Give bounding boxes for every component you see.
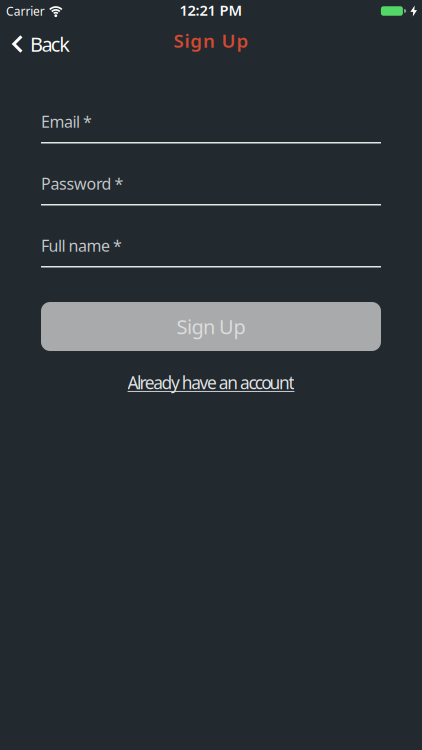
staticText: Full name *: [41, 235, 122, 256]
button[interactable]: Email *: [41, 113, 381, 143]
button[interactable]: Already have an account: [128, 371, 294, 394]
staticText: Back: [30, 31, 70, 57]
staticText: Carrier: [6, 3, 45, 19]
button[interactable]: Back: [12, 31, 70, 57]
staticText: Already have an account: [128, 371, 294, 394]
staticText: Sign Up: [176, 313, 245, 340]
staticText: Password *: [41, 173, 123, 194]
staticText: Sign Up: [174, 28, 248, 53]
button[interactable]: Full name *: [41, 237, 381, 267]
button[interactable]: Sign Up: [41, 302, 381, 351]
button[interactable]: Password *: [41, 175, 381, 205]
staticText: Email *: [41, 111, 92, 132]
staticText: 12:21 PM: [179, 0, 242, 20]
